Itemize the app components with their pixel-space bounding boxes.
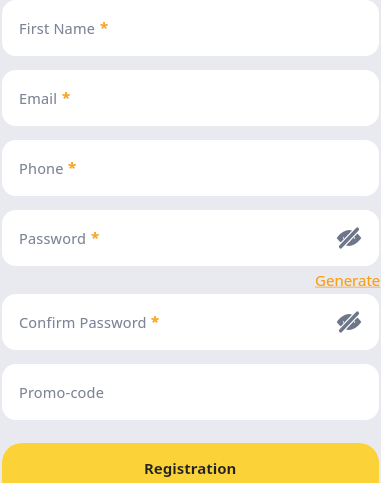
button[interactable]: Generate bbox=[315, 268, 381, 292]
button[interactable]: Promo-code bbox=[2, 364, 379, 420]
button[interactable]: Show password bbox=[336, 225, 362, 251]
staticText: * bbox=[68, 157, 77, 177]
staticText: Confirm Password bbox=[19, 312, 147, 332]
staticText: Password bbox=[19, 228, 87, 248]
button[interactable]: First Name bbox=[2, 0, 379, 56]
staticText: * bbox=[100, 17, 109, 37]
staticText: Registration bbox=[144, 458, 237, 478]
staticText: First Name bbox=[19, 18, 96, 38]
button[interactable]: Show password bbox=[336, 309, 362, 335]
staticText: Phone bbox=[19, 158, 64, 178]
staticText: Promo-code bbox=[19, 382, 105, 402]
staticText: * bbox=[62, 87, 71, 107]
staticText: Generate bbox=[315, 270, 381, 290]
staticText: * bbox=[91, 227, 100, 247]
staticText: Email bbox=[19, 88, 58, 108]
button[interactable]: Confirm Password bbox=[2, 294, 379, 350]
button[interactable]: Phone bbox=[2, 140, 379, 196]
button[interactable]: Password bbox=[2, 210, 379, 266]
button[interactable]: Registration bbox=[2, 443, 379, 483]
button[interactable]: Email bbox=[2, 70, 379, 126]
staticText: * bbox=[151, 311, 160, 331]
